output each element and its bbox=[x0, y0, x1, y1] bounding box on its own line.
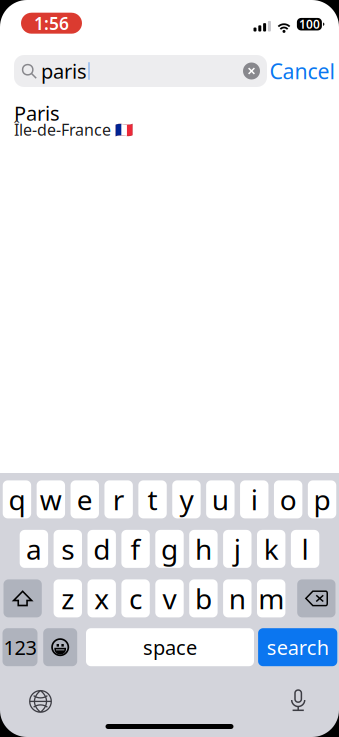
button[interactable]: Paris bbox=[14, 104, 324, 137]
staticText: Cancel bbox=[269, 57, 335, 85]
button[interactable]: Dictation bbox=[276, 680, 320, 720]
button[interactable]: x bbox=[87, 579, 116, 617]
staticText: n bbox=[229, 580, 246, 617]
button[interactable]: o bbox=[274, 480, 302, 518]
staticText: w bbox=[40, 481, 62, 518]
staticText: s bbox=[61, 530, 74, 567]
staticText: x bbox=[94, 580, 109, 617]
staticText: h bbox=[195, 530, 212, 567]
staticText: 100 bbox=[299, 16, 320, 32]
staticText: c bbox=[129, 580, 142, 617]
button[interactable]: k bbox=[257, 530, 285, 568]
staticText: z bbox=[61, 580, 74, 617]
button[interactable]: Shift bbox=[3, 579, 42, 617]
button[interactable]: c bbox=[121, 579, 150, 617]
staticText: space bbox=[143, 634, 197, 660]
staticText: d bbox=[93, 530, 110, 567]
button[interactable]: q bbox=[3, 480, 31, 518]
button[interactable]: p bbox=[308, 480, 336, 518]
button[interactable]: Clear text bbox=[243, 62, 260, 79]
staticText: p bbox=[313, 481, 330, 518]
staticText: f bbox=[131, 530, 141, 567]
button[interactable]: l bbox=[291, 530, 319, 568]
button[interactable]: m bbox=[257, 579, 285, 617]
button[interactable]: Cancel bbox=[262, 54, 339, 88]
button[interactable]: search bbox=[258, 628, 337, 666]
button[interactable]: Next keyboard bbox=[18, 681, 62, 721]
button[interactable]: z bbox=[54, 579, 82, 617]
staticText: j bbox=[234, 530, 241, 567]
staticText: g bbox=[161, 530, 178, 567]
staticText: y bbox=[179, 481, 193, 518]
button[interactable]: e bbox=[70, 480, 99, 518]
button[interactable]: r bbox=[104, 480, 133, 518]
staticText: paris bbox=[41, 58, 87, 84]
staticText: b bbox=[195, 580, 212, 617]
button[interactable]: i bbox=[240, 480, 268, 518]
staticText: v bbox=[162, 580, 176, 617]
button[interactable]: a bbox=[20, 530, 48, 568]
button[interactable]: h bbox=[189, 530, 218, 568]
staticText: i bbox=[251, 481, 258, 518]
button[interactable]: s bbox=[54, 530, 82, 568]
button[interactable]: Emoji bbox=[43, 628, 77, 666]
staticText: o bbox=[280, 481, 297, 518]
staticText: r bbox=[113, 481, 125, 518]
staticText: k bbox=[264, 530, 279, 567]
button[interactable]: b bbox=[189, 579, 218, 617]
button[interactable]: t bbox=[138, 480, 167, 518]
staticText: search bbox=[267, 634, 329, 660]
staticText: Paris bbox=[14, 100, 60, 126]
staticText: e bbox=[77, 481, 93, 518]
button[interactable]: Delete bbox=[297, 579, 335, 617]
button[interactable]: n bbox=[223, 579, 251, 617]
button[interactable]: w bbox=[37, 480, 65, 518]
staticText: 123 bbox=[3, 634, 36, 660]
staticText: Île-de-France bbox=[14, 119, 111, 140]
button[interactable]: v bbox=[155, 579, 184, 617]
staticText: m bbox=[258, 580, 284, 617]
button[interactable]: f bbox=[121, 530, 150, 568]
button[interactable]: g bbox=[155, 530, 184, 568]
button[interactable]: y bbox=[172, 480, 201, 518]
staticText: t bbox=[147, 481, 157, 518]
staticText: q bbox=[8, 481, 25, 518]
staticText: l bbox=[302, 530, 309, 567]
staticText: u bbox=[212, 481, 229, 518]
button[interactable]: space bbox=[86, 628, 254, 666]
staticText: a bbox=[26, 530, 42, 567]
button[interactable]: 123 bbox=[2, 628, 37, 666]
staticText: 🇫🇷 bbox=[115, 121, 133, 138]
button[interactable]: u bbox=[206, 480, 235, 518]
button[interactable]: d bbox=[87, 530, 116, 568]
staticText: 1:56 bbox=[34, 12, 69, 35]
button[interactable]: j bbox=[223, 530, 251, 568]
